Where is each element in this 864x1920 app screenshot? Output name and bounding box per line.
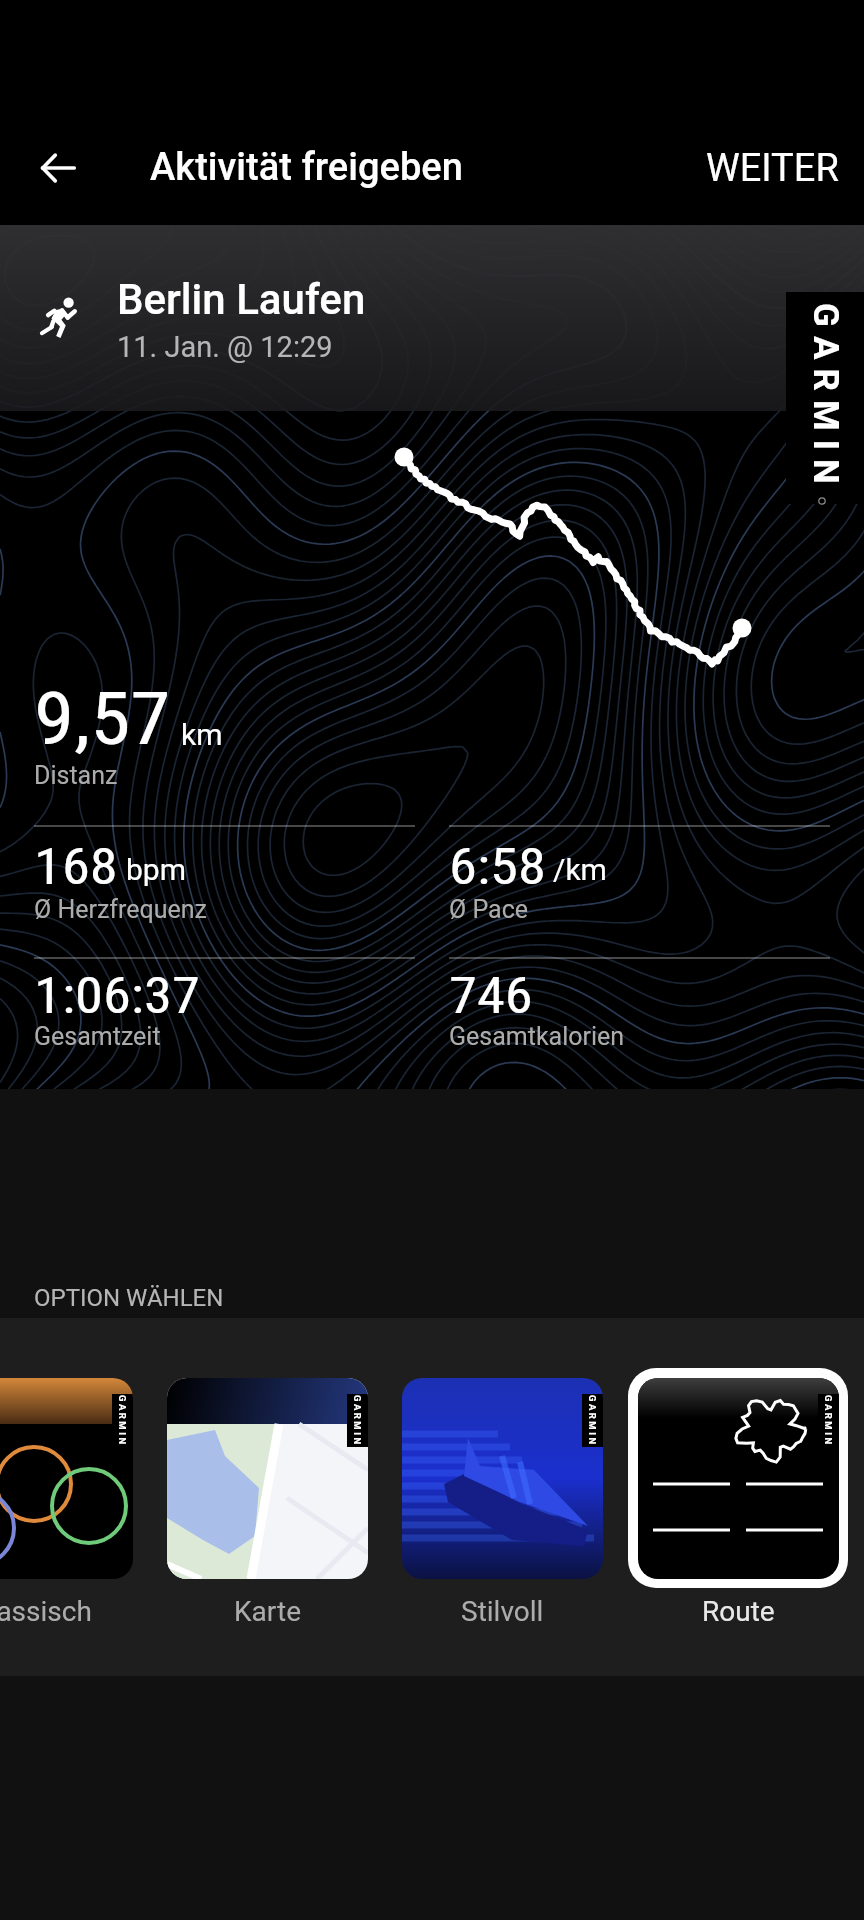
staticText: GARMIN bbox=[352, 1395, 363, 1447]
staticText: Stilvoll bbox=[461, 1595, 544, 1628]
staticText: GARMIN bbox=[805, 303, 846, 493]
staticText: Gesamtzeit bbox=[34, 1022, 161, 1051]
staticText: /km bbox=[553, 852, 607, 887]
staticText: 1:06:37 bbox=[34, 967, 200, 1026]
staticText: Karte bbox=[234, 1595, 301, 1628]
staticText: Berlin Laufen bbox=[117, 275, 366, 324]
button[interactable]: GARMIN bbox=[392, 1368, 612, 1628]
staticText: Gesamtkalorien bbox=[449, 1022, 625, 1051]
staticText: WEITER bbox=[706, 146, 839, 191]
staticText: 9,57 bbox=[34, 677, 171, 761]
staticText: GARMIN bbox=[823, 1395, 834, 1447]
staticText: Ø Pace bbox=[449, 895, 528, 924]
staticText: Klassisch bbox=[0, 1595, 92, 1628]
staticText: 11. Jan. @ 12:29 bbox=[117, 330, 333, 364]
button[interactable]: Zurück bbox=[26, 136, 90, 200]
button[interactable]: GARMIN bbox=[157, 1368, 377, 1628]
staticText: 746 bbox=[449, 967, 534, 1026]
staticText: Aktivität freigeben bbox=[150, 145, 463, 190]
staticText: GARMIN bbox=[587, 1395, 598, 1447]
button[interactable]: GARMIN bbox=[0, 1368, 142, 1628]
staticText: 168 bbox=[34, 838, 119, 897]
staticText: 6:58 bbox=[449, 838, 546, 897]
staticText: OPTION WÄHLEN bbox=[34, 1284, 224, 1312]
staticText: Distanz bbox=[34, 761, 118, 790]
button[interactable]: GARMIN bbox=[628, 1368, 848, 1628]
staticText: Ø Herzfrequenz bbox=[34, 895, 208, 924]
button[interactable]: WEITER bbox=[690, 136, 854, 200]
staticText: bpm bbox=[126, 852, 186, 887]
staticText: Route bbox=[702, 1595, 775, 1628]
staticText: km bbox=[181, 717, 223, 752]
staticText: GARMIN bbox=[117, 1395, 128, 1447]
